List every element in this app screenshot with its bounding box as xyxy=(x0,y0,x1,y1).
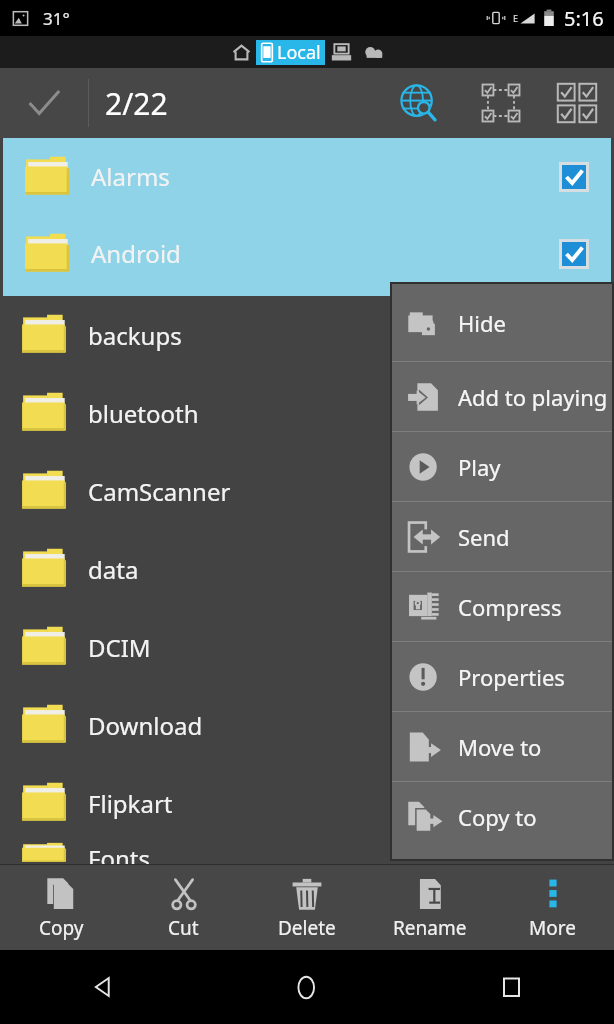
button[interactable]: Select all xyxy=(548,74,606,132)
button[interactable]: Rename xyxy=(368,865,491,950)
staticText: Hide xyxy=(458,308,506,338)
staticText: Send xyxy=(458,522,510,552)
button[interactable]: Copy to xyxy=(392,782,612,851)
button[interactable]: Selected xyxy=(559,162,589,192)
button[interactable]: Local xyxy=(256,40,325,65)
staticText: Compress xyxy=(458,592,562,622)
button[interactable]: Selected xyxy=(559,239,589,269)
staticText: bluetooth xyxy=(88,397,199,430)
button[interactable]: Back xyxy=(0,950,204,1024)
staticText: 31° xyxy=(43,7,70,30)
button[interactable]: bluetooth xyxy=(0,374,614,452)
button[interactable]: Copy xyxy=(0,865,122,950)
button[interactable]: Search xyxy=(386,70,452,136)
button[interactable]: More xyxy=(491,865,614,950)
button[interactable]: Move to xyxy=(392,712,612,781)
staticText: More xyxy=(529,915,576,941)
staticText: Add to playing xyxy=(458,382,608,412)
button[interactable]: Alarms xyxy=(3,138,611,215)
staticText: data xyxy=(88,553,139,586)
button[interactable]: Computer xyxy=(325,36,357,68)
button[interactable]: Cut xyxy=(122,865,245,950)
button[interactable]: Delete xyxy=(245,865,368,950)
staticText: E xyxy=(513,12,519,24)
button[interactable]: Recents xyxy=(409,950,614,1024)
button[interactable]: Properties xyxy=(392,642,612,711)
button[interactable]: Download xyxy=(0,686,614,764)
staticText: Android xyxy=(91,237,181,270)
staticText: Copy to xyxy=(458,802,537,832)
staticText: Local xyxy=(277,40,321,65)
button[interactable]: Compress xyxy=(392,572,612,641)
button[interactable]: Send xyxy=(392,502,612,571)
staticText: CamScanner xyxy=(88,475,231,508)
staticText: Download xyxy=(88,709,203,742)
button[interactable]: Flipkart xyxy=(0,764,614,842)
button[interactable]: Add to playing xyxy=(392,362,612,431)
button[interactable]: data xyxy=(0,530,614,608)
staticText: backups xyxy=(88,319,182,352)
button[interactable]: Android xyxy=(3,215,611,292)
staticText: 5:16 xyxy=(564,5,604,32)
button[interactable]: Select interval xyxy=(472,74,530,132)
button[interactable]: Home xyxy=(226,37,256,67)
button[interactable]: Hide xyxy=(392,284,612,361)
staticText: DCIM xyxy=(88,631,151,664)
staticText: Play xyxy=(458,452,501,482)
staticText: Fonts xyxy=(88,842,150,864)
button[interactable]: DCIM xyxy=(0,608,614,686)
staticText: Properties xyxy=(458,662,565,692)
staticText: Alarms xyxy=(91,160,170,193)
button[interactable]: backups xyxy=(0,296,614,374)
button[interactable]: Cloud xyxy=(357,36,389,68)
staticText: Cut xyxy=(168,915,199,941)
staticText: Rename xyxy=(393,915,467,941)
staticText: Move to xyxy=(458,732,542,762)
button[interactable]: Done xyxy=(0,68,88,138)
button[interactable]: Play xyxy=(392,432,612,501)
staticText: Delete xyxy=(278,915,336,941)
button[interactable]: Home xyxy=(204,950,409,1024)
staticText: Flipkart xyxy=(88,787,173,820)
button[interactable]: Fonts xyxy=(0,842,614,864)
staticText: Copy xyxy=(39,915,84,941)
button[interactable]: CamScanner xyxy=(0,452,614,530)
staticText: 2/22 xyxy=(105,83,168,124)
